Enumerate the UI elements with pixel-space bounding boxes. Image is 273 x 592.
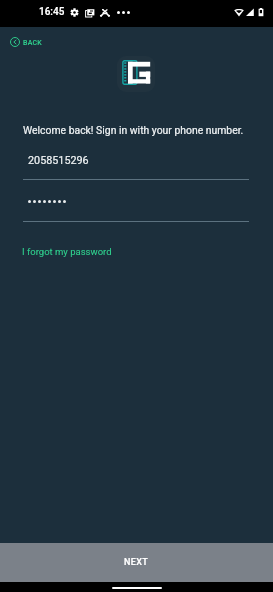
staticText: 16:45	[39, 6, 65, 18]
staticText: Welcome back! Sign in with your phone nu…	[23, 124, 244, 136]
staticText: NEXT	[124, 557, 149, 568]
button[interactable]: NEXT	[0, 543, 273, 582]
staticText: I forgot my password	[22, 246, 112, 257]
button[interactable]: I forgot my password	[20, 244, 114, 259]
other: App	[100, 8, 110, 18]
other: News	[85, 8, 95, 18]
staticText: 2058515296	[28, 154, 89, 167]
staticText: BACK	[23, 39, 43, 47]
other: Settings	[70, 8, 79, 17]
button[interactable]: BACK	[7, 34, 46, 50]
